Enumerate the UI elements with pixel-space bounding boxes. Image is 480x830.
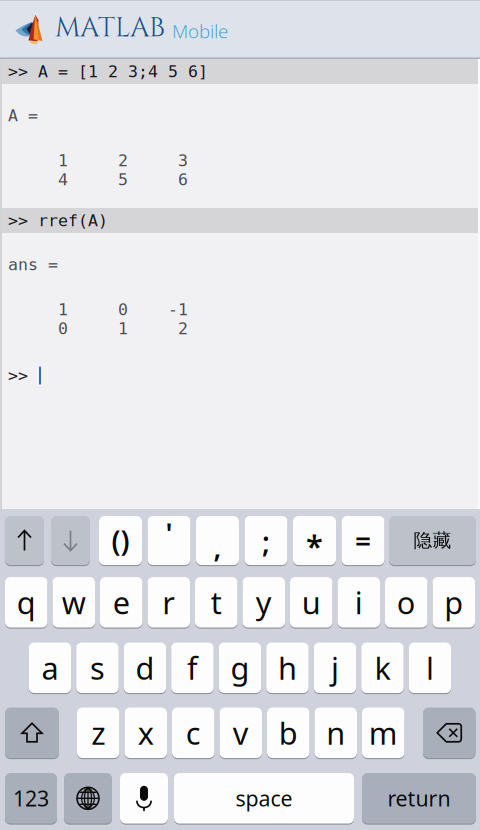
staticText: b xyxy=(279,712,298,753)
staticText: h xyxy=(278,647,297,688)
staticText: w xyxy=(62,582,86,623)
button[interactable]: () xyxy=(99,515,142,566)
staticText: r xyxy=(162,582,175,623)
staticText: >> A = [1 2 3;4 5 6] xyxy=(8,62,208,81)
button[interactable]: i xyxy=(337,576,380,628)
button[interactable]: r xyxy=(147,576,190,628)
staticText: z xyxy=(91,712,105,753)
staticText: * xyxy=(306,525,323,566)
staticText: s xyxy=(90,647,105,688)
button[interactable]: 隐藏 xyxy=(389,515,476,566)
button[interactable]: * xyxy=(293,515,336,566)
button[interactable]: = xyxy=(341,515,384,566)
button[interactable]: q xyxy=(5,576,47,628)
staticText: m xyxy=(369,712,398,753)
button[interactable]: , xyxy=(196,515,239,566)
staticText: space xyxy=(235,784,292,812)
staticText: a xyxy=(41,647,58,688)
staticText: t xyxy=(211,582,222,623)
button[interactable]: Scroll up xyxy=(5,515,44,566)
button[interactable]: space xyxy=(174,772,354,824)
button[interactable]: Delete xyxy=(423,707,475,759)
staticText: o xyxy=(397,582,416,623)
staticText: j xyxy=(331,647,339,688)
button[interactable]: t xyxy=(195,576,237,628)
button[interactable]: m xyxy=(362,707,404,759)
button[interactable]: a xyxy=(29,642,71,694)
staticText: u xyxy=(302,582,321,623)
staticText: ' xyxy=(165,515,172,552)
button[interactable]: e xyxy=(100,576,142,628)
staticText: >> xyxy=(8,366,28,385)
button[interactable]: p xyxy=(432,576,475,628)
button[interactable]: return xyxy=(362,772,476,824)
staticText: x xyxy=(138,712,154,753)
staticText: 123 xyxy=(13,784,49,812)
button[interactable]: k xyxy=(361,642,404,694)
staticText: return xyxy=(387,784,450,812)
button[interactable]: b xyxy=(267,707,309,759)
staticText: 1 0 -1 xyxy=(8,300,188,319)
staticText: k xyxy=(374,647,390,688)
staticText: q xyxy=(17,582,36,623)
staticText: = xyxy=(355,522,371,559)
staticText: ; xyxy=(262,523,270,560)
button[interactable]: Dictation xyxy=(120,772,168,824)
button[interactable]: ' xyxy=(147,515,190,566)
button[interactable]: Next keyboard xyxy=(64,772,112,824)
button[interactable]: y xyxy=(242,576,285,628)
staticText: A = xyxy=(8,106,38,125)
button[interactable]: f xyxy=(171,642,214,694)
staticText: , xyxy=(213,528,221,565)
staticText: MATLAB xyxy=(55,10,165,46)
button[interactable]: 123 xyxy=(5,772,57,824)
button[interactable]: v xyxy=(219,707,262,759)
staticText: >> rref(A) xyxy=(8,211,108,230)
button[interactable]: l xyxy=(409,642,451,694)
staticText: c xyxy=(186,712,201,753)
button[interactable]: n xyxy=(314,707,357,759)
staticText: f xyxy=(187,647,198,688)
button[interactable]: Shift xyxy=(5,707,59,759)
staticText: v xyxy=(233,712,249,753)
button[interactable]: u xyxy=(290,576,332,628)
button[interactable]: c xyxy=(172,707,214,759)
staticText: e xyxy=(113,582,130,623)
staticText: Mobile xyxy=(172,19,228,43)
staticText: 1 2 3 xyxy=(8,151,188,170)
button[interactable]: ; xyxy=(244,515,287,566)
button[interactable]: Scroll down xyxy=(51,515,90,566)
button[interactable]: d xyxy=(124,642,166,694)
staticText: p xyxy=(444,582,463,623)
staticText: 隐藏 xyxy=(413,529,451,552)
staticText: g xyxy=(230,647,249,688)
button[interactable]: h xyxy=(266,642,309,694)
staticText: y xyxy=(256,582,272,623)
button[interactable]: z xyxy=(77,707,119,759)
staticText: d xyxy=(135,647,154,688)
button[interactable]: o xyxy=(385,576,427,628)
staticText: ans = xyxy=(8,255,58,274)
button[interactable]: s xyxy=(76,642,119,694)
staticText: n xyxy=(326,712,345,753)
staticText: 4 5 6 xyxy=(8,170,188,189)
staticText: 0 1 2 xyxy=(8,319,188,338)
button[interactable]: g xyxy=(219,642,261,694)
button[interactable]: w xyxy=(52,576,95,628)
staticText: () xyxy=(111,522,129,559)
button[interactable]: j xyxy=(314,642,356,694)
staticText: l xyxy=(426,647,434,688)
button[interactable]: x xyxy=(124,707,167,759)
staticText: i xyxy=(355,582,363,623)
